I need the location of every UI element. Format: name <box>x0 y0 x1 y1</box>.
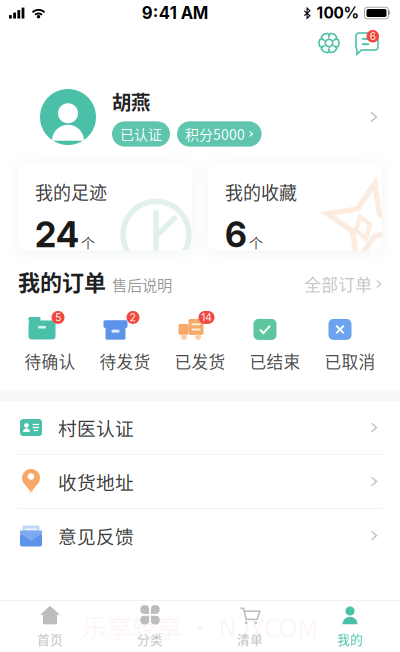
button[interactable]: Settings <box>316 30 342 56</box>
staticText: 全部订单 <box>304 272 372 296</box>
staticText: 100% <box>316 4 359 22</box>
staticText: 我的足迹 <box>35 178 107 205</box>
staticText: 首页 <box>37 630 63 648</box>
button[interactable]: 首页 <box>0 602 100 650</box>
staticText: 9:41 AM <box>142 3 209 23</box>
staticText: 待确认 <box>24 349 75 373</box>
button[interactable]: 村医认证 <box>0 401 400 454</box>
button[interactable]: 14 <box>162 311 237 373</box>
staticText: 已认证 <box>120 124 162 144</box>
staticText: 胡燕 <box>112 87 150 115</box>
button[interactable]: 胡燕 <box>0 82 400 152</box>
staticText: 乐享轻享 · NJYCOM <box>81 608 318 645</box>
staticText: 售后说明 <box>112 273 172 295</box>
button[interactable]: 收货地址 <box>0 455 400 508</box>
staticText: 6 <box>370 30 376 42</box>
staticText: 我的 <box>337 630 363 648</box>
staticText: 清单 <box>237 630 263 648</box>
staticText: 6 <box>225 214 247 255</box>
staticText: 已取消 <box>324 349 375 373</box>
button[interactable]: 已结束 <box>237 311 312 373</box>
button[interactable]: 5 <box>12 311 87 373</box>
staticText: 我的收藏 <box>225 178 297 205</box>
staticText: 2 <box>129 311 136 324</box>
button[interactable]: 分类 <box>100 602 200 650</box>
staticText: 积分5000 <box>185 124 245 144</box>
staticText: 个 <box>249 232 263 252</box>
button[interactable]: 意见反馈 <box>0 509 400 562</box>
button[interactable]: 全部订单 <box>304 272 382 297</box>
button[interactable]: Messages <box>356 30 386 56</box>
staticText: 意见反馈 <box>58 522 134 549</box>
staticText: 24 <box>35 214 79 255</box>
button[interactable]: 我的收藏 <box>208 162 382 250</box>
staticText: 收货地址 <box>58 468 134 495</box>
staticText: 14 <box>201 311 212 324</box>
button[interactable]: 清单 <box>200 602 300 650</box>
staticText: 分类 <box>137 630 163 648</box>
button[interactable]: 我的 <box>300 602 400 650</box>
staticText: 个 <box>81 232 95 252</box>
button[interactable]: 我的足迹 <box>18 162 192 250</box>
staticText: 已发货 <box>174 349 225 373</box>
staticText: 待发货 <box>99 349 150 373</box>
button[interactable]: 2 <box>87 311 162 373</box>
staticText: 我的订单 <box>18 265 106 297</box>
staticText: 已结束 <box>249 349 300 373</box>
staticText: 村医认证 <box>58 414 134 441</box>
staticText: 5 <box>55 311 61 324</box>
button[interactable]: 已取消 <box>312 311 387 373</box>
